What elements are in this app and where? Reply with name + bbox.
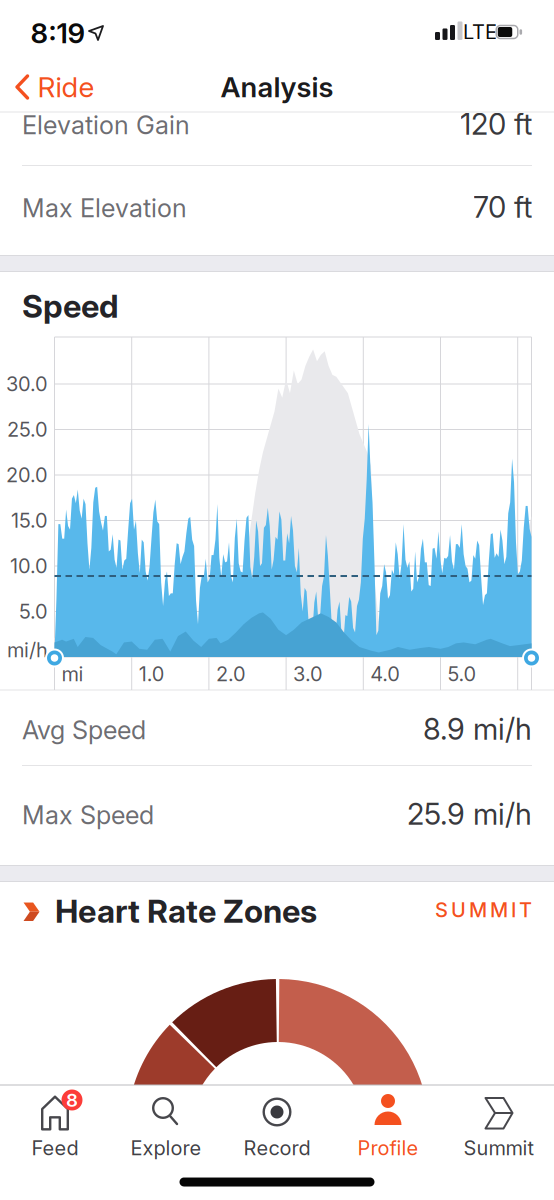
staticText: Analysis	[220, 70, 333, 103]
staticText: S U M M I T	[435, 898, 532, 922]
button[interactable]: Ride	[15, 65, 94, 109]
staticText: 70 ft	[473, 190, 532, 224]
button[interactable]: Profile	[336, 1089, 440, 1163]
staticText: 25.9 mi/h	[407, 797, 532, 831]
staticText: 8:19	[30, 16, 85, 49]
staticText: Ride	[37, 70, 94, 103]
staticText: 120 ft	[460, 107, 532, 141]
staticText: 3.0	[293, 662, 323, 686]
button[interactable]: 8	[3, 1089, 107, 1163]
staticText: 15.0	[11, 509, 48, 532]
staticText: 2.0	[216, 662, 246, 686]
staticText: 30.0	[6, 372, 48, 396]
staticText: 1.0	[139, 662, 165, 686]
staticText: Heart Rate Zones	[55, 892, 317, 930]
button[interactable]: S U M M I T	[392, 895, 532, 925]
staticText: Max Elevation	[22, 193, 187, 223]
staticText: LTE	[463, 20, 497, 44]
button[interactable]: Record	[225, 1089, 329, 1163]
staticText: 4.0	[370, 662, 400, 686]
staticText: 8	[66, 1089, 78, 1111]
button[interactable]: Explore	[114, 1089, 218, 1163]
staticText: Explore	[130, 1136, 201, 1160]
staticText: Feed	[31, 1136, 78, 1160]
staticText: mi/h	[7, 638, 48, 662]
staticText: 5.0	[19, 600, 48, 623]
staticText: 20.0	[6, 463, 48, 487]
staticText: Max Speed	[22, 800, 154, 830]
staticText: 5.0	[447, 662, 476, 686]
staticText: 8.9 mi/h	[423, 712, 532, 746]
staticText: Record	[243, 1136, 310, 1160]
staticText: 10.0	[10, 554, 48, 578]
staticText: 25.0	[7, 418, 48, 441]
staticText: Profile	[357, 1136, 418, 1160]
staticText: Speed	[22, 287, 119, 325]
staticText: Elevation Gain	[22, 110, 190, 140]
staticText: Avg Speed	[22, 715, 146, 745]
staticText: Summit	[463, 1136, 534, 1160]
staticText: mi	[61, 662, 83, 686]
button[interactable]: Summit	[447, 1089, 551, 1163]
